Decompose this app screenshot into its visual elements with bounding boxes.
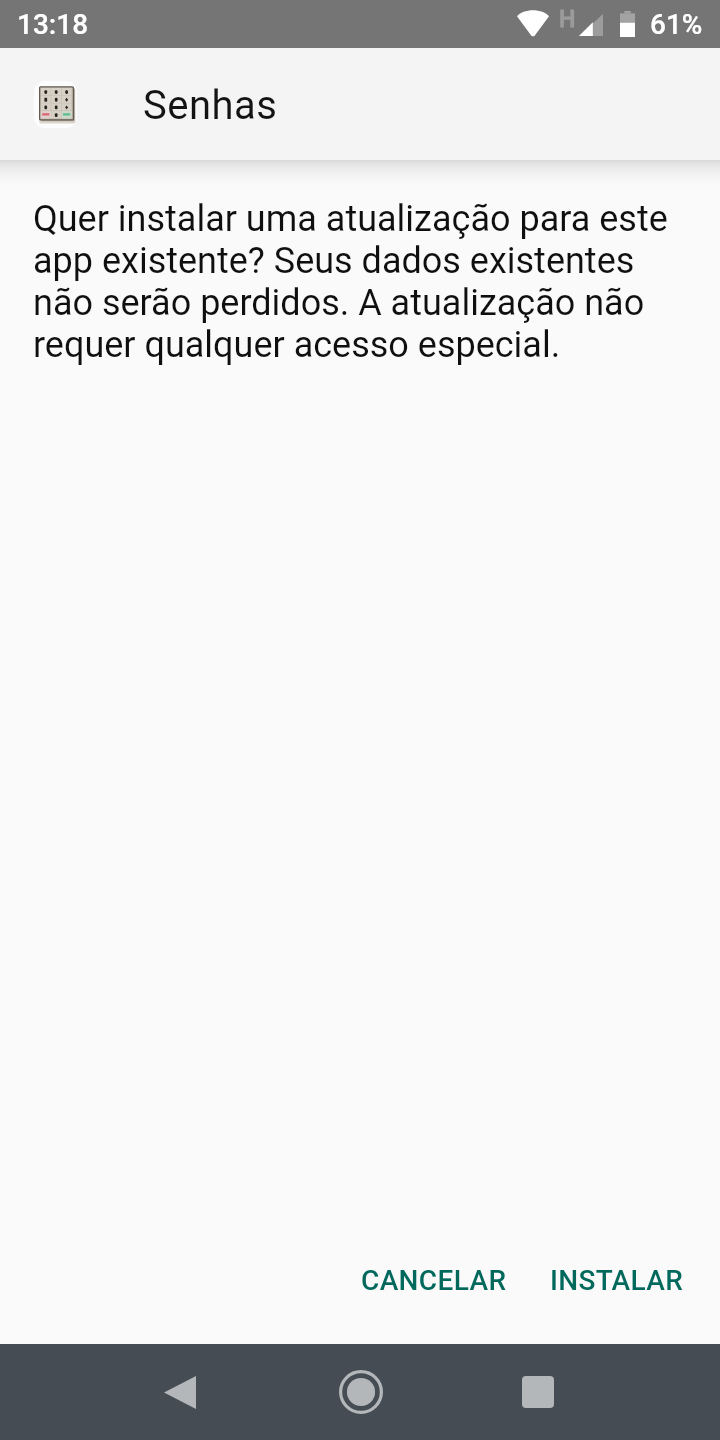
staticText: CANCELAR: [361, 1264, 507, 1297]
button[interactable]: INSTALAR: [535, 1248, 699, 1313]
button[interactable]: CANCELAR: [346, 1248, 522, 1313]
button[interactable]: Back: [132, 1344, 228, 1440]
staticText: 13:18: [17, 8, 89, 41]
button[interactable]: Recent apps: [490, 1344, 586, 1440]
button[interactable]: Home: [313, 1344, 409, 1440]
staticText: Senhas: [143, 82, 278, 129]
staticText: 61%: [650, 8, 703, 41]
staticText: INSTALAR: [550, 1264, 684, 1297]
staticText: Quer instalar uma atualização para este …: [33, 198, 690, 366]
staticText: H: [559, 6, 577, 33]
